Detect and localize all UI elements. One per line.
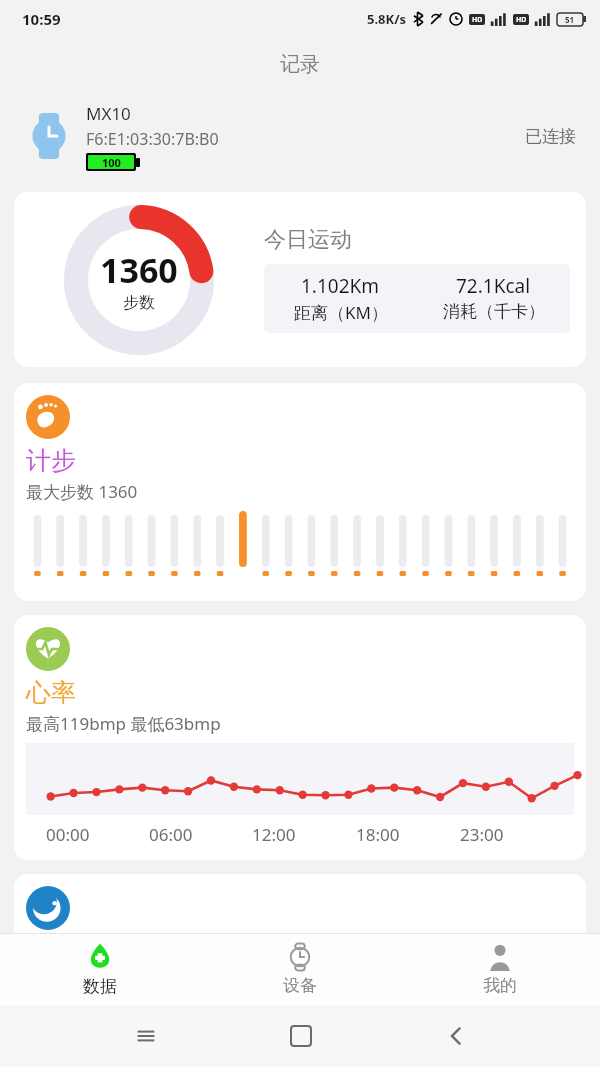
staticText: 10:59	[22, 9, 61, 29]
staticText: 记录	[280, 52, 320, 77]
staticText: 23:00	[460, 823, 564, 846]
staticText: 我的	[483, 975, 517, 996]
staticText: 今日运动	[264, 226, 352, 254]
staticText: 步数	[123, 293, 155, 313]
staticText: 最高119bmp 最低63bmp	[26, 712, 221, 735]
staticText: 51	[565, 14, 575, 25]
staticText: 1.102Km	[301, 273, 380, 299]
staticText: 72.1Kcal	[456, 273, 531, 299]
button[interactable]: 我的	[400, 934, 600, 1005]
staticText: 设备	[283, 975, 317, 996]
staticText: 消耗（千卡）	[443, 301, 545, 322]
other: Recents	[135, 1025, 157, 1047]
staticText: 06:00	[149, 823, 252, 846]
button[interactable]: MX10	[0, 90, 600, 182]
staticText: 00:00	[46, 823, 149, 846]
button[interactable]: 心率	[14, 615, 586, 860]
button[interactable]: 数据	[0, 934, 200, 1005]
staticText: 已连接	[525, 126, 576, 147]
staticText: MX10	[86, 102, 131, 125]
button[interactable]	[14, 874, 586, 944]
staticText: 距离（KM）	[294, 301, 388, 324]
staticText: HD	[472, 15, 483, 25]
staticText: HD	[516, 15, 527, 25]
button[interactable]: 计步	[14, 383, 586, 601]
button[interactable]: 1360	[14, 192, 586, 367]
staticText: 计步	[26, 445, 76, 476]
button[interactable]: 设备	[200, 934, 400, 1005]
staticText: 18:00	[356, 823, 460, 846]
staticText: 5.8K/s	[367, 10, 407, 28]
staticText: 数据	[83, 976, 117, 997]
staticText: 最大步数 1360	[26, 480, 138, 503]
staticText: 心率	[26, 677, 76, 708]
other: Back	[446, 1026, 466, 1046]
staticText: 1360	[100, 247, 178, 293]
staticText: 12:00	[252, 823, 356, 846]
other: Home	[291, 1026, 311, 1046]
staticText: F6:E1:03:30:7B:B0	[86, 128, 219, 150]
staticText: 100	[102, 155, 121, 169]
